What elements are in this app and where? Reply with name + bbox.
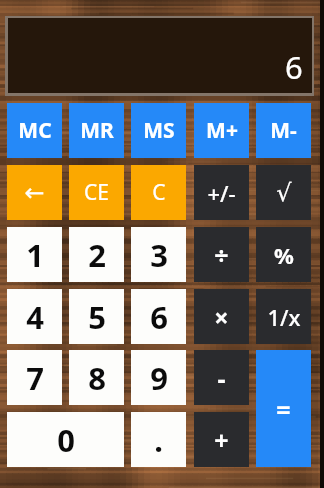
staticText: √ bbox=[276, 179, 292, 207]
staticText: 9 bbox=[150, 357, 168, 399]
staticText: 6 bbox=[150, 296, 168, 338]
button[interactable]: Divide bbox=[194, 227, 249, 282]
staticText: . bbox=[154, 419, 163, 461]
staticText: × bbox=[214, 300, 229, 334]
button[interactable]: M- bbox=[256, 103, 311, 158]
staticText: 2 bbox=[88, 234, 106, 276]
button[interactable]: +/- bbox=[194, 165, 249, 220]
staticText: ← bbox=[24, 179, 45, 207]
staticText: M+ bbox=[206, 116, 238, 145]
staticText: 1/x bbox=[267, 302, 301, 332]
staticText: 8 bbox=[88, 357, 106, 399]
staticText: 1 bbox=[26, 234, 44, 276]
staticText: 3 bbox=[150, 234, 168, 276]
staticText: +/- bbox=[207, 178, 236, 208]
staticText: 4 bbox=[26, 296, 44, 338]
staticText: - bbox=[217, 361, 226, 395]
button[interactable]: 2 bbox=[69, 227, 124, 282]
button[interactable]: Plus bbox=[194, 412, 249, 467]
staticText: CE bbox=[84, 178, 109, 207]
button[interactable]: Backspace bbox=[7, 165, 62, 220]
staticText: MR bbox=[80, 116, 114, 145]
staticText: 5 bbox=[88, 296, 106, 338]
staticText: 7 bbox=[26, 357, 44, 399]
button[interactable]: 0 bbox=[7, 412, 124, 467]
button[interactable]: CE bbox=[69, 165, 124, 220]
button[interactable]: MC bbox=[7, 103, 62, 158]
button[interactable]: 3 bbox=[131, 227, 186, 282]
staticText: + bbox=[214, 423, 229, 457]
button[interactable]: % bbox=[256, 227, 311, 282]
button[interactable]: C bbox=[131, 165, 186, 220]
button[interactable]: . bbox=[131, 412, 186, 467]
button[interactable]: 1 bbox=[7, 227, 62, 282]
staticText: MC bbox=[18, 116, 52, 145]
button[interactable]: 7 bbox=[7, 350, 62, 405]
button[interactable]: MR bbox=[69, 103, 124, 158]
staticText: % bbox=[274, 240, 294, 270]
staticText: ÷ bbox=[214, 238, 229, 272]
button[interactable]: 1/x bbox=[256, 289, 311, 344]
button[interactable]: Equals bbox=[256, 350, 311, 467]
staticText: MS bbox=[143, 116, 175, 145]
button[interactable]: Multiply bbox=[194, 289, 249, 344]
staticText: 0 bbox=[57, 419, 75, 461]
button[interactable]: M+ bbox=[194, 103, 249, 158]
staticText: 6 bbox=[285, 46, 303, 88]
button[interactable]: 4 bbox=[7, 289, 62, 344]
button[interactable]: 8 bbox=[69, 350, 124, 405]
button[interactable]: Square root bbox=[256, 165, 311, 220]
staticText: C bbox=[152, 178, 166, 207]
button[interactable]: 9 bbox=[131, 350, 186, 405]
button[interactable]: 5 bbox=[69, 289, 124, 344]
button[interactable]: MS bbox=[131, 103, 186, 158]
staticText: M- bbox=[270, 116, 297, 145]
staticText: = bbox=[276, 392, 291, 426]
button[interactable]: Minus bbox=[194, 350, 249, 405]
button[interactable]: 6 bbox=[131, 289, 186, 344]
